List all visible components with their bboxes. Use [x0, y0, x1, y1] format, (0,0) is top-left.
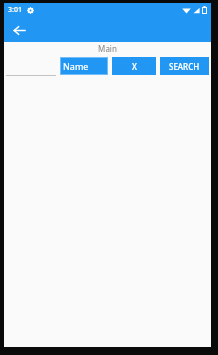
- button[interactable]: X: [112, 57, 156, 75]
- button[interactable]: Name: [60, 57, 108, 75]
- staticText: Name: [63, 60, 89, 72]
- staticText: 3:01: [8, 5, 22, 15]
- staticText: Main: [98, 43, 117, 54]
- staticText: SEARCH: [169, 61, 200, 72]
- button[interactable]: Back: [8, 19, 30, 41]
- button[interactable]: SEARCH: [160, 57, 209, 75]
- button[interactable]: Text input: [6, 57, 56, 76]
- staticText: X: [132, 61, 137, 72]
